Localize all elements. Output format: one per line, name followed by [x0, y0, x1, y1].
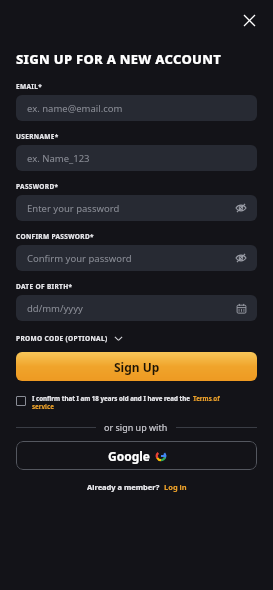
staticText: Already a member? [87, 482, 160, 492]
button[interactable]: I confirm that I am 18 years old and I h… [16, 394, 257, 410]
staticText: SIGN UP FOR A NEW ACCOUNT [16, 50, 222, 68]
staticText: PROMO CODE (OPTIONAL) [16, 334, 108, 343]
button[interactable]: ex. name@email.com [16, 95, 257, 121]
staticText: ex. Name_123 [27, 152, 90, 165]
button[interactable]: Show password [233, 200, 249, 216]
staticText: Terms of [193, 394, 220, 402]
button[interactable]: Sign Up [16, 352, 257, 381]
staticText: service [32, 402, 54, 410]
staticText: or sign up with [104, 421, 168, 433]
button[interactable]: Confirm your password [16, 245, 257, 271]
staticText: ex. name@email.com [27, 102, 123, 115]
button[interactable]: Close [237, 8, 261, 32]
staticText: Confirm your password [27, 252, 132, 265]
button[interactable]: Enter your password [16, 195, 257, 221]
staticText: CONFIRM PASSWORD* [16, 232, 94, 241]
button[interactable]: PROMO CODE (OPTIONAL) [16, 334, 123, 343]
button[interactable]: Pick date [233, 300, 249, 316]
staticText: PASSWORD* [16, 182, 59, 191]
button[interactable]: Show confirm password [233, 250, 249, 266]
staticText: Google [108, 448, 151, 464]
button[interactable]: Google [16, 441, 257, 470]
staticText: Sign Up [114, 359, 160, 375]
staticText: dd/mm/yyyy [27, 302, 83, 315]
button[interactable]: ex. Name_123 [16, 145, 257, 171]
staticText: Enter your password [27, 202, 120, 215]
staticText: EMAIL* [16, 82, 43, 91]
button[interactable]: Log in [164, 482, 187, 492]
button[interactable]: dd/mm/yyyy [16, 295, 257, 321]
staticText: DATE OF BIRTH* [16, 282, 73, 291]
staticText: USERNAME* [16, 132, 59, 141]
staticText: I confirm that I am 18 years old and I h… [32, 394, 190, 402]
